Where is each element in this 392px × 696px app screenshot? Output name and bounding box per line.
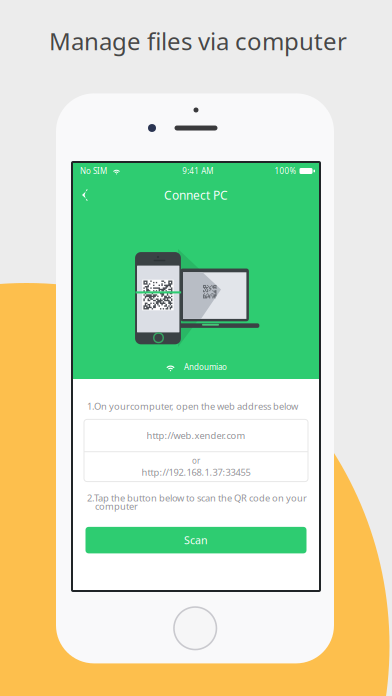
button[interactable]: Scan	[85, 527, 306, 553]
staticText: No SIM	[80, 166, 107, 176]
staticText: Connect PC	[164, 187, 228, 203]
staticText: computer	[95, 500, 138, 512]
staticText: 1.On yourcomputer, open the web address …	[87, 400, 298, 412]
staticText: 2.Tap the button below to scan the QR co…	[87, 492, 307, 504]
button[interactable]: Back	[73, 179, 104, 210]
staticText: Scan	[184, 533, 208, 547]
staticText: Manage files via computer	[49, 25, 347, 57]
staticText: 9:41 AM	[182, 166, 213, 176]
staticText: Andoumiao	[184, 362, 227, 372]
staticText: or	[192, 455, 200, 466]
staticText: 100%	[274, 166, 296, 176]
staticText: http://192.168.1.37:33455	[141, 466, 250, 478]
staticText: http://web.xender.com	[146, 429, 245, 441]
